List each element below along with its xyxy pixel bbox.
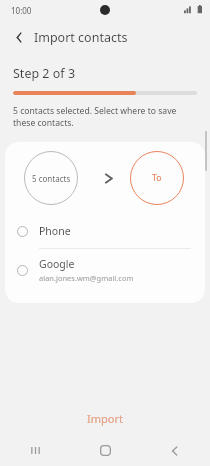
button[interactable]: Google [5, 249, 205, 291]
staticText: 5 contacts [32, 173, 71, 184]
staticText: alan.jones.wm@gmail.com [39, 273, 134, 283]
staticText: Phone [39, 224, 71, 238]
staticText: Step 2 of 3 [13, 65, 76, 82]
staticText: Import [87, 411, 123, 426]
button[interactable]: Home [70, 435, 140, 466]
staticText: Import contacts [34, 29, 128, 46]
button[interactable]: Back [140, 435, 210, 466]
button[interactable]: Recent apps [0, 435, 70, 466]
button[interactable]: Phone [5, 214, 205, 248]
button[interactable]: Import [0, 401, 210, 435]
staticText: 10:00 [11, 5, 32, 16]
staticText: Google [39, 257, 75, 271]
button[interactable]: Back [6, 24, 32, 50]
button[interactable]: 5 contacts [24, 151, 78, 205]
button[interactable]: To [130, 151, 184, 205]
staticText: To [152, 172, 162, 184]
staticText: 5 contacts selected. Select where to sav… [13, 105, 197, 129]
